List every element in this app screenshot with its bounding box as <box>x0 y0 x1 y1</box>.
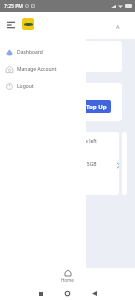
button[interactable]: Dashboard <box>0 48 86 56</box>
staticText: A <box>116 23 120 30</box>
button[interactable]: Manage Account <box>0 65 86 73</box>
button[interactable]: Account <box>111 19 125 33</box>
button[interactable]: Home <box>53 269 82 284</box>
staticText: 30 days left <box>70 138 97 145</box>
button[interactable]: Open navigation menu <box>3 17 18 32</box>
button[interactable]: Logout <box>0 82 86 90</box>
button[interactable]: 30 days left <box>6 132 119 195</box>
staticText: Top Up <box>86 103 107 111</box>
button[interactable]: Home <box>61 287 74 300</box>
staticText: Logout <box>17 83 34 90</box>
staticText: 7:25 PM <box>4 3 23 10</box>
button[interactable]: App logo <box>22 18 34 30</box>
staticText: 15GB <box>84 161 97 168</box>
other: Plan details <box>113 160 119 170</box>
button[interactable]: Top Up <box>81 100 111 113</box>
staticText: Dashboard <box>17 49 43 56</box>
button[interactable]: Recent apps <box>34 287 47 300</box>
staticText: Manage Account <box>17 66 57 73</box>
staticText: Home <box>61 277 74 283</box>
button[interactable]: Back <box>88 287 101 300</box>
